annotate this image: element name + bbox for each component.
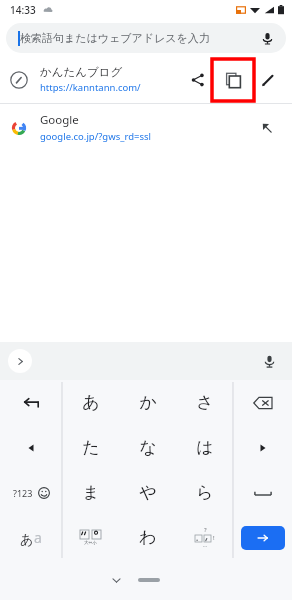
button[interactable]: 検索語句またはウェブアドレスを入力 xyxy=(6,23,286,53)
button[interactable]: Delete xyxy=(233,380,292,425)
other: Space xyxy=(254,489,272,497)
staticText: ら xyxy=(196,482,214,503)
button[interactable]: な xyxy=(119,425,176,470)
button[interactable]: Expand suggestions xyxy=(8,349,32,373)
staticText: 大⇔小 xyxy=(84,540,97,546)
staticText: な xyxy=(139,437,157,458)
staticText: わ xyxy=(139,527,157,548)
button[interactable]: Cursor right xyxy=(233,425,292,470)
staticText: https://kanntann.com/ xyxy=(40,81,141,94)
staticText: ! xyxy=(213,534,215,542)
button[interactable]: Copy xyxy=(212,59,254,101)
button[interactable]: Share xyxy=(184,66,212,94)
other: Delete xyxy=(253,396,273,410)
button[interactable]: Cursor left xyxy=(0,425,62,470)
button[interactable]: ら xyxy=(176,470,233,515)
staticText: google.co.jp/?gws_rd=ssl xyxy=(40,130,151,143)
button[interactable]: Insert query xyxy=(252,113,282,143)
staticText: … xyxy=(203,542,207,549)
staticText: かんたんブログ xyxy=(40,65,123,79)
button[interactable]: Enter xyxy=(241,526,285,550)
button[interactable]: Hide keyboard xyxy=(104,568,128,592)
staticText: あ xyxy=(82,392,100,413)
staticText: や xyxy=(139,482,157,503)
button[interactable]: た xyxy=(62,425,119,470)
button[interactable]: Enter xyxy=(233,515,292,560)
staticText: ?123 xyxy=(13,487,33,499)
button[interactable]: Edit xyxy=(254,66,282,94)
button[interactable]: や xyxy=(119,470,176,515)
button[interactable]: Google xyxy=(0,104,292,151)
staticText: か xyxy=(139,392,157,413)
staticText: Google xyxy=(40,112,79,128)
staticText: は xyxy=(196,437,214,458)
staticText: a xyxy=(34,528,42,547)
button[interactable]: あ xyxy=(0,515,62,560)
button[interactable]: か xyxy=(119,380,176,425)
button[interactable]: わ xyxy=(119,515,176,560)
staticText: 検索語句またはウェブアドレスを入力 xyxy=(20,31,210,45)
other: Cursor right xyxy=(258,443,268,453)
staticText: 14:33 xyxy=(10,3,36,17)
button[interactable]: ? xyxy=(176,515,233,560)
staticText: あ xyxy=(20,531,34,547)
other: Undo xyxy=(22,394,40,412)
button[interactable]: あ xyxy=(62,380,119,425)
button[interactable]: ?123 xyxy=(0,470,62,515)
button[interactable]: さ xyxy=(176,380,233,425)
staticText: た xyxy=(82,437,100,458)
button[interactable]: Undo xyxy=(0,380,62,425)
staticText: さ xyxy=(196,392,214,413)
staticText: ? xyxy=(204,526,207,534)
button[interactable]: は xyxy=(176,425,233,470)
button[interactable]: 大⇔小 xyxy=(62,515,119,560)
other: Voice search xyxy=(261,32,274,45)
staticText: ま xyxy=(82,482,100,503)
button[interactable]: Home xyxy=(138,578,160,582)
button[interactable]: かんたんブログ xyxy=(0,56,292,103)
button[interactable]: Space xyxy=(233,470,292,515)
button[interactable]: Voice input xyxy=(258,350,280,372)
button[interactable]: ま xyxy=(62,470,119,515)
other: Cursor left xyxy=(26,443,36,453)
